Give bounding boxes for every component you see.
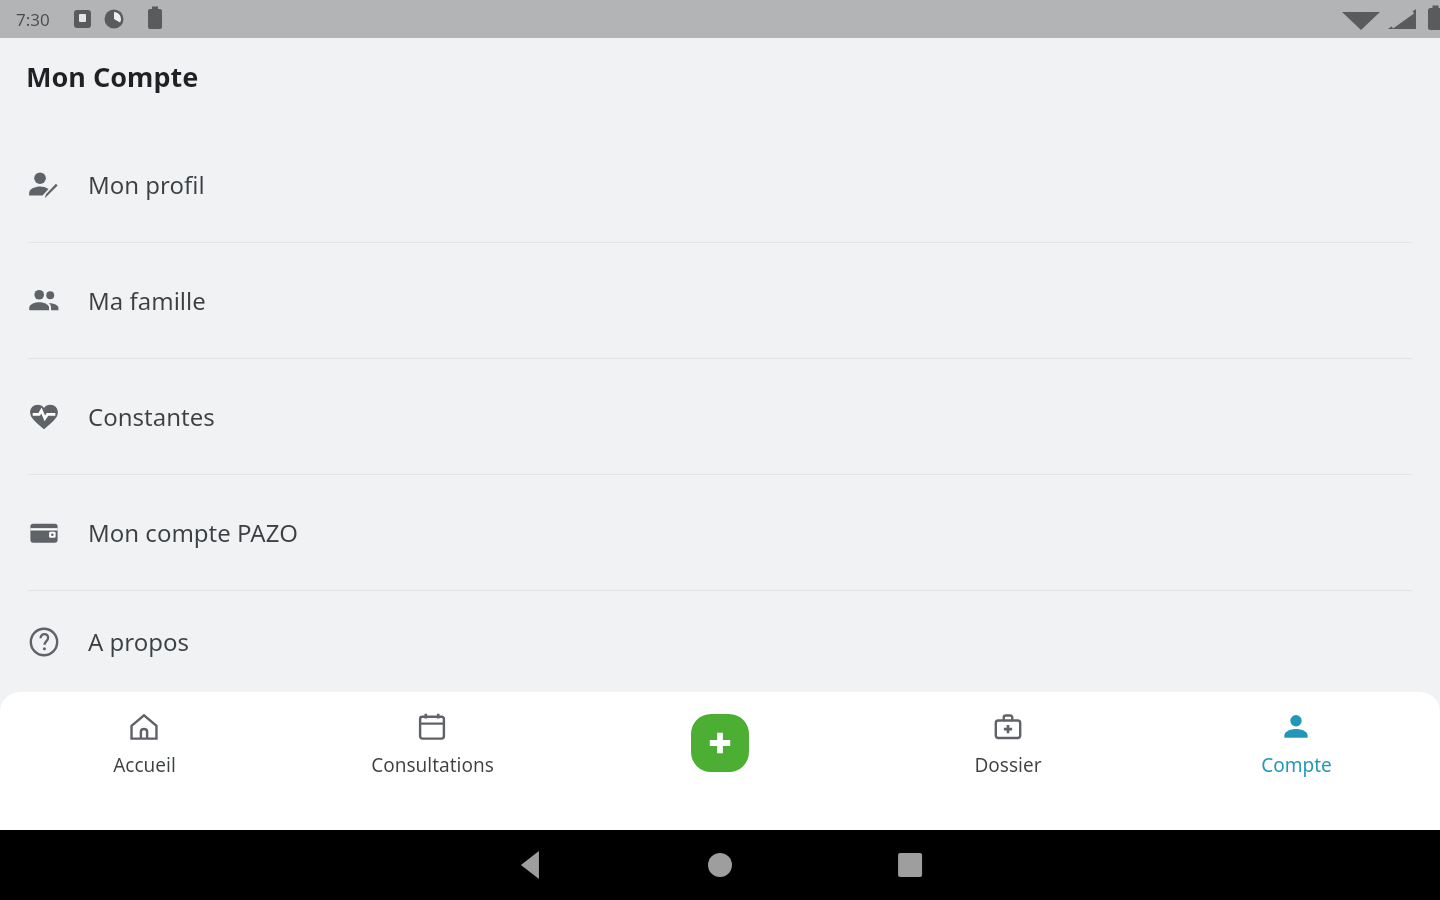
button[interactable]: Accueil	[0, 710, 288, 830]
button[interactable]: Mon compte PAZO	[0, 475, 1440, 590]
button[interactable]: Constantes	[0, 359, 1440, 474]
staticText: 7:30	[16, 8, 50, 31]
staticText: Ma famille	[88, 284, 206, 317]
button[interactable]: Dossier	[864, 710, 1152, 830]
staticText: Accueil	[113, 752, 176, 778]
button[interactable]: Compte	[1152, 710, 1440, 830]
button[interactable]: Ajouter	[691, 714, 749, 772]
staticText: Mon compte PAZO	[88, 516, 298, 549]
button[interactable]: A propos	[0, 591, 1440, 692]
button[interactable]: Consultations	[288, 710, 576, 830]
staticText: Mon profil	[88, 168, 205, 201]
button[interactable]: Mon profil	[0, 127, 1440, 242]
staticText: Compte	[1261, 752, 1332, 778]
button[interactable]: Ma famille	[0, 243, 1440, 358]
staticText: A propos	[88, 625, 190, 658]
staticText: Constantes	[88, 400, 215, 433]
staticText: Dossier	[974, 752, 1042, 778]
staticText: Consultations	[371, 752, 494, 778]
staticText: Mon Compte	[26, 58, 199, 95]
